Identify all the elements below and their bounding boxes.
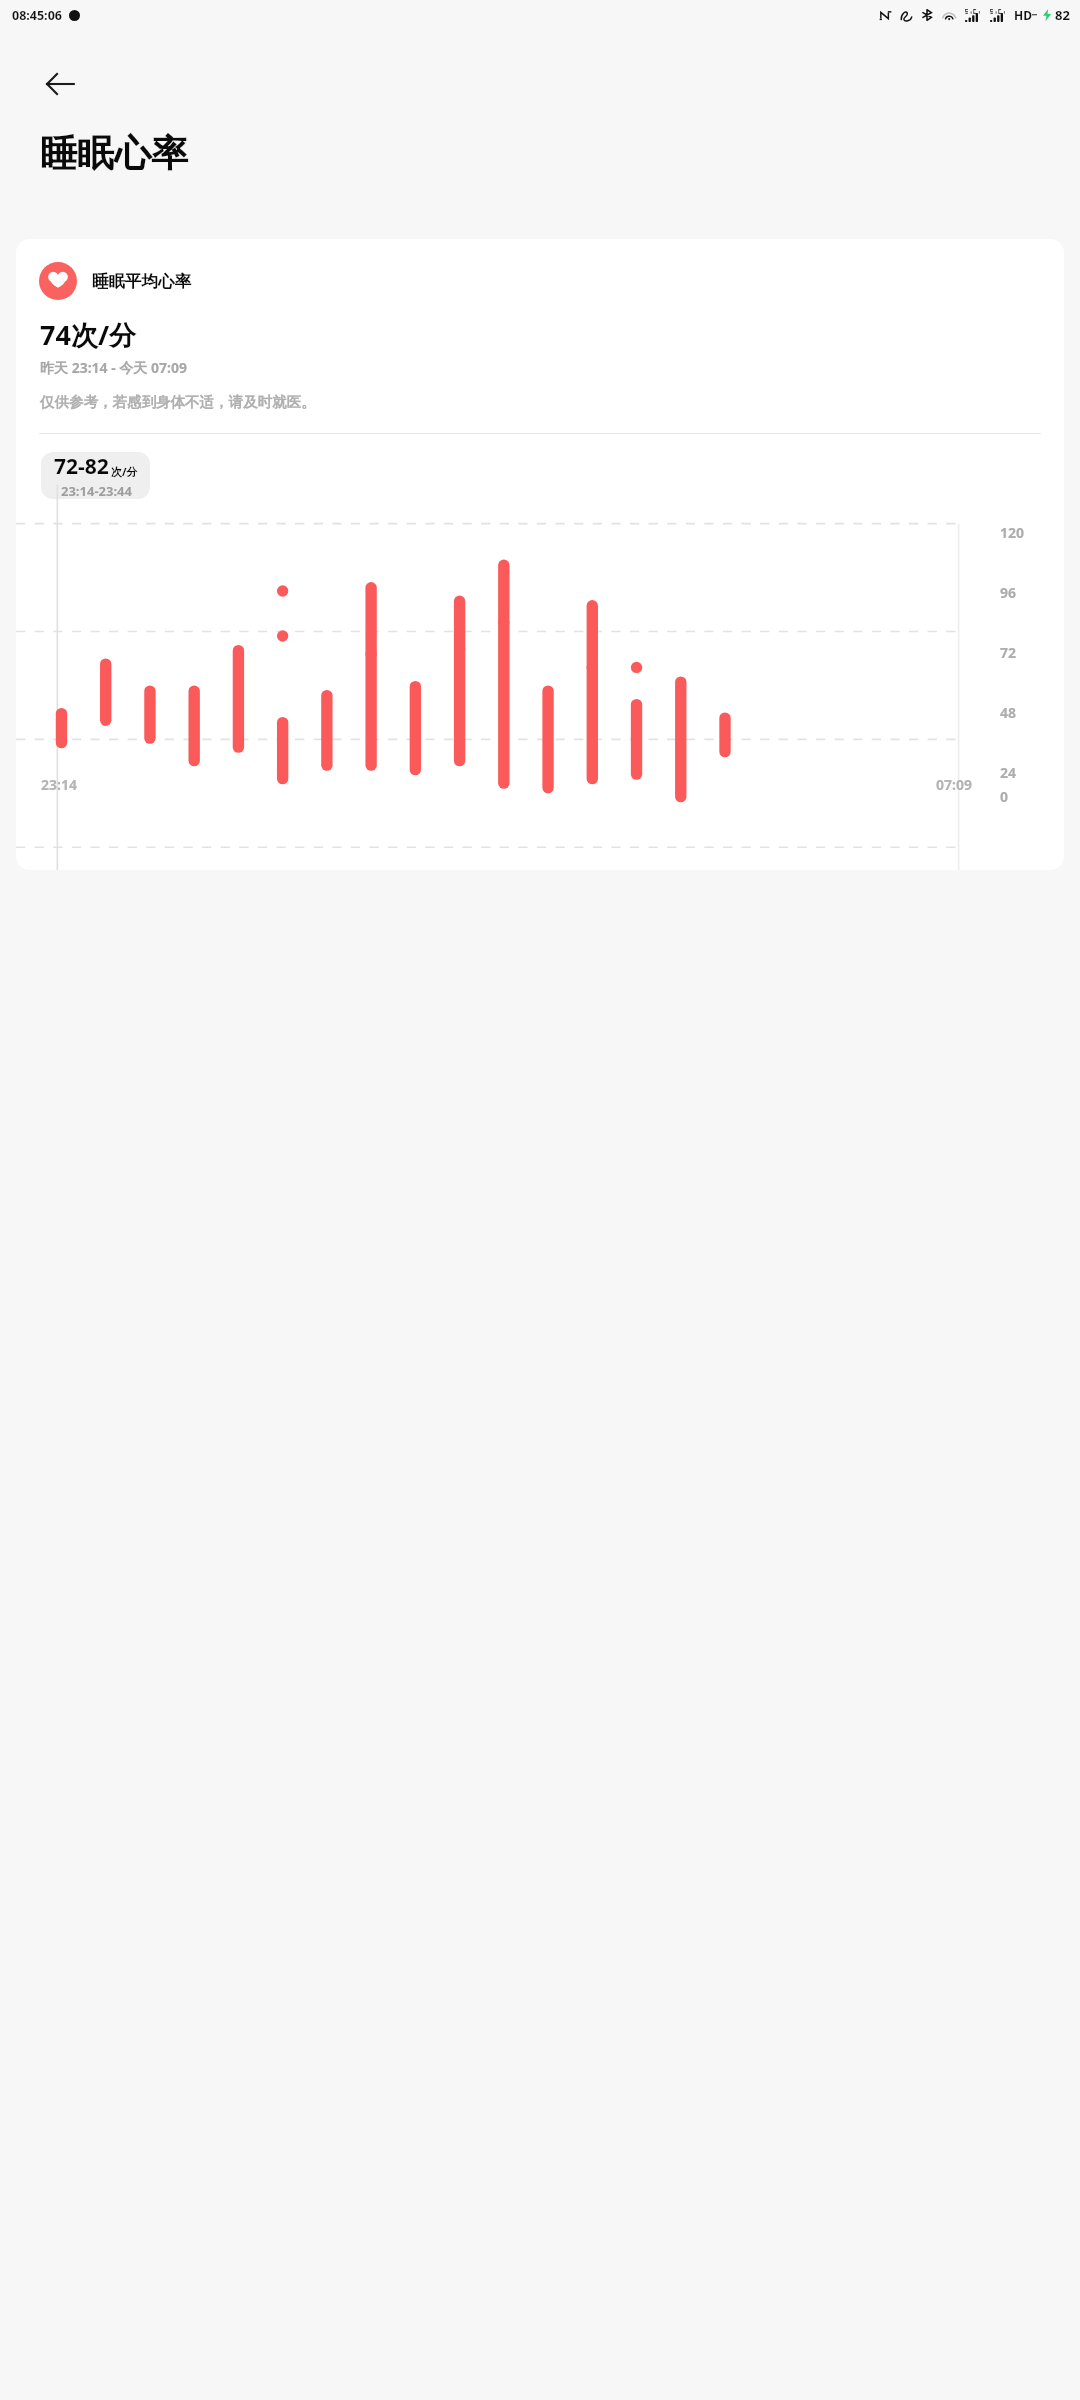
button[interactable]: 72-82	[41, 452, 150, 499]
button[interactable]: 睡眠平均心率	[16, 239, 1064, 870]
staticText: 仅供参考，若感到身体不适，请及时就医。	[40, 393, 316, 411]
staticText: 0	[1000, 787, 1009, 806]
staticText: HD	[1014, 7, 1032, 23]
staticText: 23:14	[41, 775, 77, 794]
staticText: 08:45:06	[12, 7, 62, 24]
staticText: 48	[1000, 703, 1017, 722]
staticText: 23:14-23:44	[61, 482, 132, 499]
staticText: 82	[1055, 6, 1070, 24]
staticText: 睡眠平均心率	[92, 271, 191, 292]
staticText: 72	[1000, 643, 1017, 662]
staticText: 120	[1000, 523, 1025, 542]
staticText: 昨天 23:14 - 今天 07:09	[40, 358, 187, 377]
staticText: 07:09	[936, 775, 972, 794]
staticText: 72-82	[54, 452, 109, 481]
staticText: 24	[1000, 763, 1017, 782]
staticText: 次/分	[111, 464, 138, 479]
staticText: 96	[1000, 583, 1017, 602]
staticText: 74次/分	[40, 316, 137, 353]
button[interactable]: Back	[34, 58, 86, 110]
staticText: 睡眠心率	[40, 130, 188, 177]
